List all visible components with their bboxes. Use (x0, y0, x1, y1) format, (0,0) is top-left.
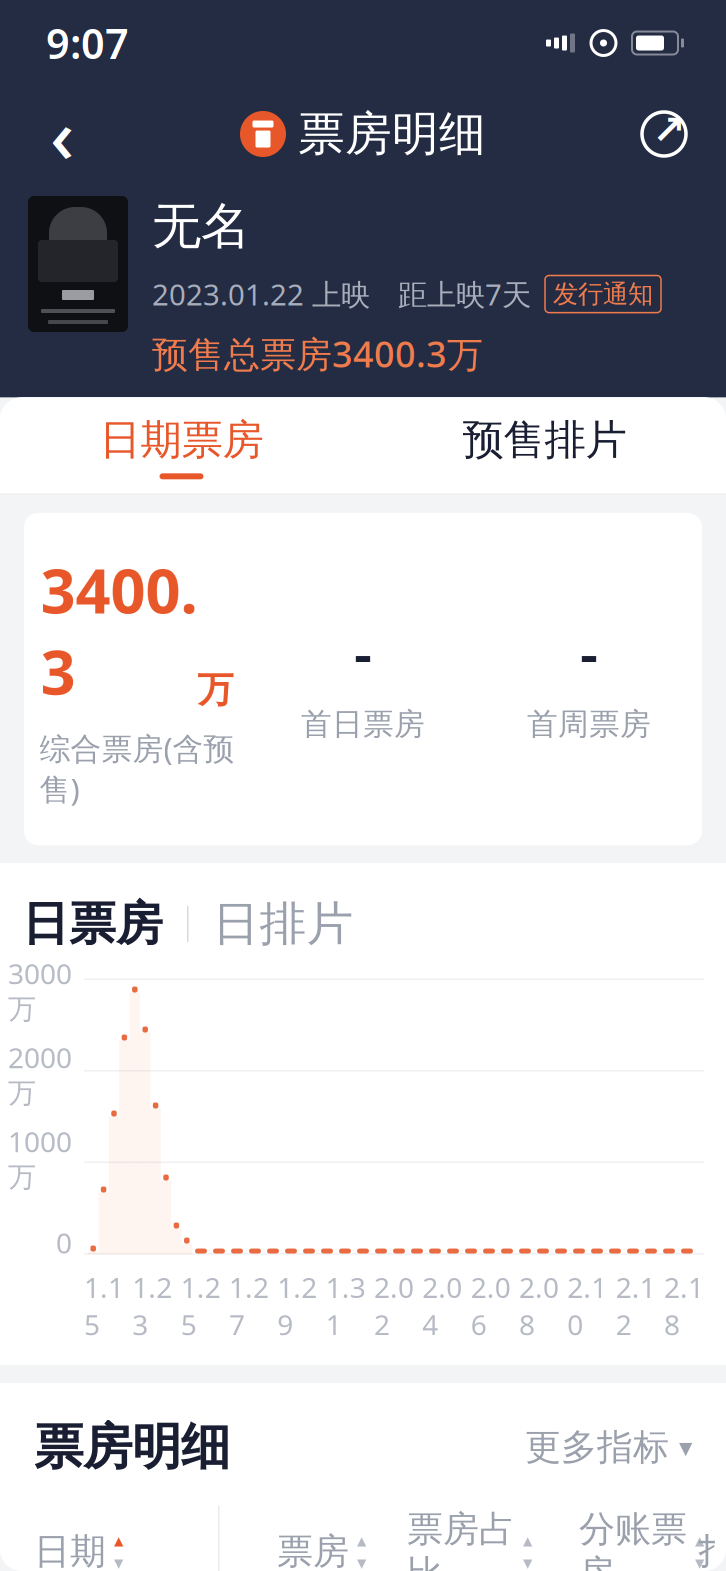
button[interactable]: Back (24, 96, 100, 172)
staticText: 日票房 (22, 895, 163, 952)
staticText: 9:07 (46, 16, 129, 70)
staticText: 1.25 (181, 1268, 221, 1343)
staticText: 2000万 (8, 1039, 72, 1110)
staticText: 扌 (697, 1529, 726, 1571)
staticText: ‹ (50, 84, 74, 184)
staticText: 2.10 (567, 1268, 607, 1343)
button[interactable]: 预售排片 (363, 397, 726, 493)
staticText: 1.31 (326, 1268, 366, 1343)
staticText: 1.15 (84, 1268, 124, 1343)
staticText: 首周票房 (527, 705, 651, 743)
staticText: 票房明细 (298, 105, 486, 163)
button[interactable]: 更多指标 (525, 1425, 692, 1469)
staticText: 万 (197, 667, 233, 712)
staticText: 2023.01.22 上映 (152, 275, 370, 314)
staticText: 日排片 (212, 895, 353, 952)
staticText: 预售总票房3400.3万 (152, 329, 483, 377)
staticText: 1.27 (229, 1268, 269, 1343)
button[interactable]: 分账票房 (532, 1505, 704, 1571)
staticText: 3000万 (8, 955, 72, 1026)
staticText: 发行通知 (553, 278, 653, 310)
staticText: 票房 (277, 1529, 349, 1571)
staticText: 3400.3 (40, 549, 197, 712)
staticText: ▾ (523, 1552, 532, 1571)
staticText: ▴ (114, 1530, 123, 1551)
staticText: 日期 (34, 1529, 106, 1571)
staticText: 1000万 (8, 1123, 72, 1194)
staticText: 更多指标 (525, 1425, 669, 1469)
staticText: ▾ (679, 1432, 692, 1462)
staticText: 0 (56, 1224, 72, 1261)
staticText: 票房明细 (34, 1417, 230, 1477)
button[interactable]: 发行通知 (545, 275, 661, 313)
button[interactable]: Share (626, 96, 702, 172)
staticText: ▴ (523, 1530, 532, 1551)
staticText: - (354, 615, 372, 689)
staticText: 2.12 (616, 1268, 656, 1343)
button[interactable]: 日排片 (212, 895, 353, 952)
staticText: - (580, 615, 598, 689)
button[interactable]: 票房占比 (366, 1505, 532, 1571)
staticText: 2.18 (664, 1268, 704, 1343)
staticText: 综合票房(含预售) (39, 728, 234, 809)
button[interactable]: 日期票房 (0, 397, 363, 493)
staticText: ↗ (652, 107, 686, 153)
staticText: ▴ (695, 1530, 704, 1551)
staticText: 2.04 (422, 1268, 462, 1343)
staticText: ▾ (695, 1552, 704, 1571)
staticText: ▾ (114, 1552, 123, 1571)
staticText: 票房占比 (407, 1507, 515, 1571)
staticText: 无名 (152, 196, 250, 257)
staticText: 距上映7天 (398, 275, 531, 314)
button[interactable]: 票房 (218, 1505, 366, 1571)
staticText: ▾ (357, 1552, 366, 1571)
staticText: 1.29 (277, 1268, 317, 1343)
button[interactable]: 日票房 (22, 895, 163, 952)
staticText: 2.06 (471, 1268, 511, 1343)
staticText: ▴ (357, 1530, 366, 1551)
staticText: 分账票房 (579, 1507, 687, 1571)
staticText: 日期票房 (99, 415, 263, 465)
staticText: 2.08 (519, 1268, 559, 1343)
staticText: 预售排片 (462, 415, 626, 465)
staticText: 首日票房 (301, 705, 425, 743)
button[interactable]: 日期 (0, 1505, 218, 1571)
staticText: 2.02 (374, 1268, 414, 1343)
staticText: 1.23 (132, 1268, 172, 1343)
